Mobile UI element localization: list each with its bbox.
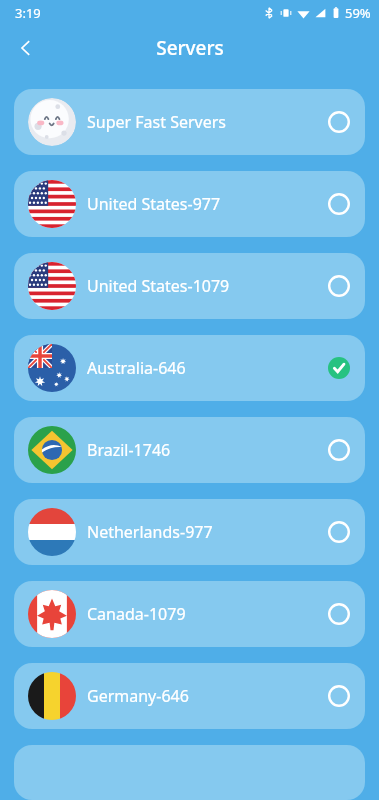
staticText: 59% [345,4,371,22]
staticText: Servers [156,35,224,61]
button[interactable]: Canada-1079 [14,581,365,647]
button[interactable]: United States-977 [14,171,365,237]
button[interactable]: Brazil-1746 [14,417,365,483]
staticText: Brazil-1746 [87,439,317,461]
button[interactable]: Germany-646 [14,663,365,729]
staticText: United States-977 [87,193,317,215]
button[interactable]: Netherlands-977 [14,499,365,565]
button[interactable]: Back [8,30,44,66]
button[interactable]: United States-1079 [14,253,365,319]
button[interactable] [14,745,365,800]
staticText: United States-1079 [87,275,317,297]
staticText: Australia-646 [87,357,317,379]
staticText: 3:19 [15,4,41,22]
button[interactable]: Australia-646 [14,335,365,401]
staticText: Super Fast Servers [87,111,317,133]
staticText: Netherlands-977 [87,521,317,543]
button[interactable]: Super Fast Servers [14,89,365,155]
staticText: Germany-646 [87,685,317,707]
staticText: Canada-1079 [87,603,317,625]
